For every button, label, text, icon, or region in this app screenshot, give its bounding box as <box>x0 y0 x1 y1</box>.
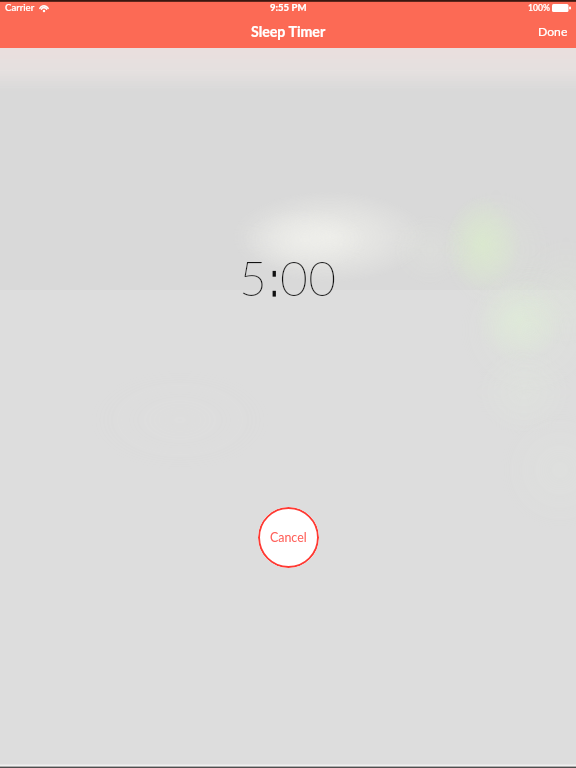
staticText: Done <box>538 24 568 39</box>
staticText: 100% <box>528 3 550 13</box>
staticText: Carrier <box>5 2 35 14</box>
button[interactable]: Cancel <box>258 507 319 568</box>
staticText: 00 <box>280 249 337 307</box>
other: Battery <box>552 4 571 12</box>
other: Wi-Fi <box>39 3 49 12</box>
staticText: 5 <box>239 249 268 307</box>
staticText: Sleep Timer <box>251 23 326 40</box>
staticText: 9:55 PM <box>270 2 307 14</box>
staticText: Cancel <box>270 530 307 545</box>
button[interactable]: Done <box>530 22 576 41</box>
